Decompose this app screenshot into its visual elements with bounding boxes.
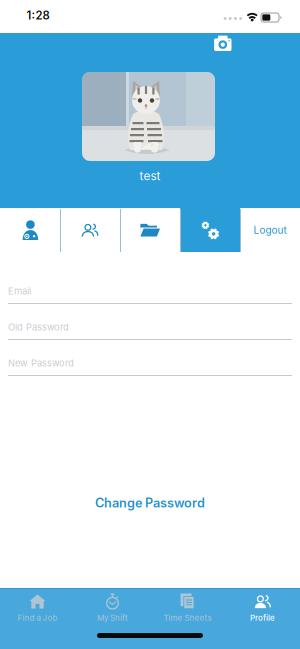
staticText: Find a Job	[17, 613, 57, 623]
staticText: test	[139, 169, 160, 183]
staticText: Email	[8, 285, 31, 297]
staticText: Old Password	[8, 321, 69, 333]
staticText: Change Password	[95, 495, 205, 511]
staticText: Profile	[250, 613, 275, 623]
staticText: Logout	[253, 224, 286, 236]
button[interactable]: My Shift	[75, 594, 150, 623]
button[interactable]: Profile details	[0, 208, 60, 252]
button[interactable]: Logout	[240, 208, 300, 252]
button[interactable]: Old Password	[8, 315, 292, 339]
button[interactable]: Find a Job	[0, 594, 75, 623]
button[interactable]: Contacts	[60, 208, 120, 252]
button[interactable]: Documents	[120, 208, 180, 252]
staticText: 1:28	[26, 9, 49, 22]
button[interactable]: Email	[8, 279, 292, 303]
button[interactable]: Profile	[225, 594, 300, 623]
button[interactable]: Time Sheets	[150, 594, 225, 623]
staticText: My Shift	[97, 613, 128, 623]
staticText: New Password	[8, 357, 74, 369]
button[interactable]: Change Password	[95, 495, 205, 511]
button[interactable]: Settings	[180, 208, 240, 252]
button[interactable]: Change photo	[213, 35, 232, 52]
button[interactable]: New Password	[8, 351, 292, 375]
staticText: Time Sheets	[163, 613, 211, 623]
